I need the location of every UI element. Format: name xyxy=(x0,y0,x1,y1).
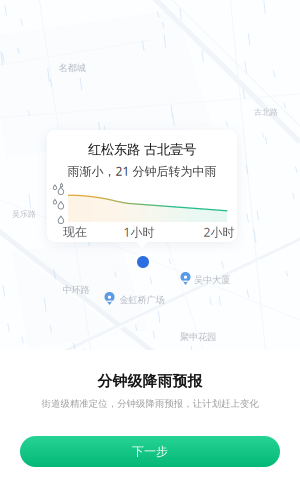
staticText: 吴中大厦 xyxy=(194,274,230,286)
staticText: 雨渐小，21 分钟后转为中雨 xyxy=(67,163,216,179)
staticText: 现在 xyxy=(63,225,87,239)
staticText: 红松东路 古北壹号 xyxy=(88,141,196,158)
staticText: 名都城 xyxy=(58,62,85,74)
staticText: 分钟级降雨预报 xyxy=(97,372,202,390)
staticText: 金虹桥广场 xyxy=(119,294,164,306)
staticText: 街道级精准定位，分钟级降雨预报，让计划赶上变化 xyxy=(41,398,258,409)
button[interactable]: 下一步 xyxy=(20,436,280,467)
staticText: 古北路 xyxy=(254,107,278,117)
staticText: 吴乐路 xyxy=(12,209,36,219)
staticText: 1小时 xyxy=(123,224,154,240)
staticText: 聚申花园 xyxy=(180,331,216,343)
staticText: 2小时 xyxy=(203,224,234,240)
staticText: 下一步 xyxy=(132,444,168,459)
staticText: 中环路 xyxy=(62,284,89,296)
